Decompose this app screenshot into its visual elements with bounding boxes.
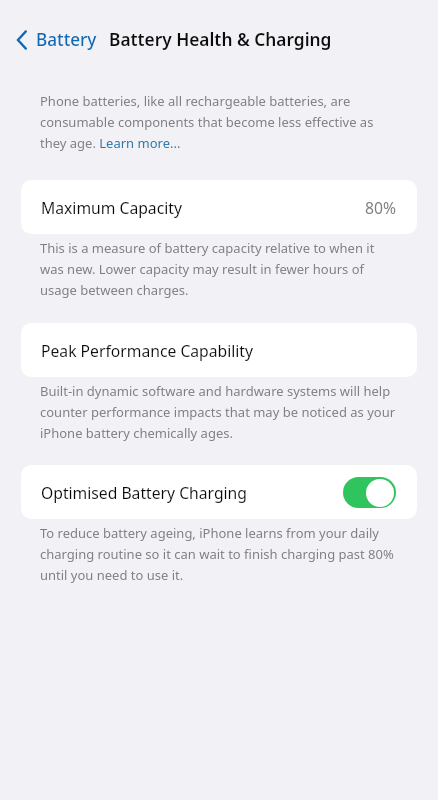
- staticText: Built-in dynamic software and hardware s…: [40, 382, 396, 441]
- staticText: Optimised Battery Charging: [41, 482, 247, 503]
- staticText: Battery Health & Charging: [109, 28, 332, 52]
- staticText: 80%: [365, 197, 396, 218]
- staticText: This is a measure of battery capacity re…: [40, 239, 396, 298]
- staticText: Maximum Capacity: [41, 197, 182, 218]
- button[interactable]: Peak Performance Capability: [21, 323, 417, 377]
- button[interactable]: Maximum Capacity: [21, 180, 417, 234]
- staticText: To reduce battery ageing, iPhone learns …: [40, 524, 396, 583]
- button[interactable]: Back to Battery: [13, 22, 100, 57]
- staticText: Phone batteries, like all rechargeable b…: [40, 92, 396, 151]
- button[interactable]: Optimised Battery Charging: [343, 477, 396, 508]
- staticText: Battery: [36, 28, 97, 51]
- staticText: Peak Performance Capability: [41, 340, 254, 361]
- button[interactable]: Optimised Battery Charging: [21, 465, 417, 519]
